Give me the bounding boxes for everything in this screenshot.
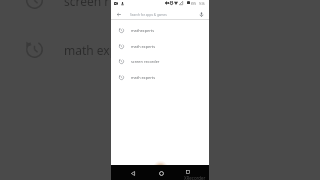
staticText: math experts [131, 44, 155, 49]
button[interactable]: math experts [111, 39, 209, 53]
button[interactable]: mathexperts [111, 23, 209, 37]
button[interactable]: math experts [111, 70, 209, 84]
staticText: screen recorder [131, 59, 160, 64]
staticText: screen r [64, 0, 110, 9]
button[interactable]: Recent apps [182, 166, 194, 178]
staticText: math experts [131, 75, 155, 80]
staticText: mathexperts [131, 28, 154, 33]
staticText: math exp [64, 42, 118, 58]
staticText: Search for apps & games [130, 13, 167, 17]
staticText: 9:36 [199, 2, 205, 6]
button[interactable]: Voice search [196, 9, 206, 19]
button[interactable]: Back [114, 9, 124, 19]
staticText: 89% [191, 2, 197, 6]
staticText: XRecorder [184, 175, 206, 180]
button[interactable]: Back [127, 167, 139, 179]
button[interactable]: screen recorder [111, 54, 209, 68]
button[interactable]: Home [155, 167, 167, 179]
